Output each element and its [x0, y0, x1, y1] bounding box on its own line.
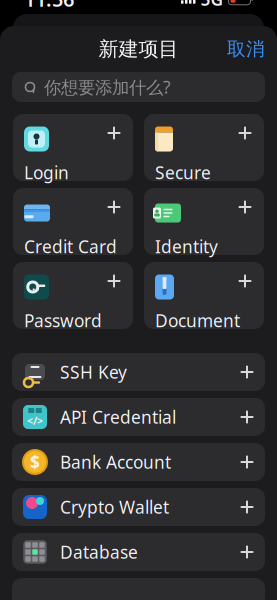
staticText: Bank Account [60, 450, 171, 473]
staticText: 5G [200, 0, 223, 10]
staticText: 新建项目 [98, 37, 178, 61]
staticText: $ [30, 450, 40, 473]
button[interactable]: Login [13, 114, 133, 181]
staticText: API Credential [60, 405, 176, 428]
button[interactable]: Credit Card [13, 188, 133, 255]
button[interactable]: Password [13, 262, 133, 329]
button[interactable]: Crypto Wallet [12, 488, 265, 526]
button[interactable]: SSH Key [12, 353, 265, 391]
staticText: 你想要添加什么? [44, 75, 171, 98]
staticText: </> [27, 413, 43, 428]
button[interactable]: Database [12, 533, 265, 571]
staticText: 取消 [227, 37, 265, 60]
button[interactable]: 你想要添加什么? [12, 72, 265, 102]
button[interactable]: Identity [144, 188, 264, 255]
button[interactable]: Document [144, 262, 264, 329]
staticText: Database [60, 540, 138, 563]
staticText: 11:56 [24, 0, 74, 12]
staticText: SSH Key [60, 360, 127, 383]
button[interactable]: $ [12, 443, 265, 481]
button[interactable]: Secure Note [144, 114, 264, 181]
staticText: Secure Note [155, 161, 211, 207]
staticText: Identity [155, 235, 218, 258]
button[interactable]: 取消 [215, 29, 277, 68]
staticText: Crypto Wallet [60, 495, 169, 518]
staticText: Login [24, 161, 69, 184]
staticText: Password [24, 309, 102, 332]
staticText: Credit Card [24, 235, 117, 258]
button[interactable]: </> [12, 398, 265, 436]
staticText: Document [155, 309, 240, 332]
